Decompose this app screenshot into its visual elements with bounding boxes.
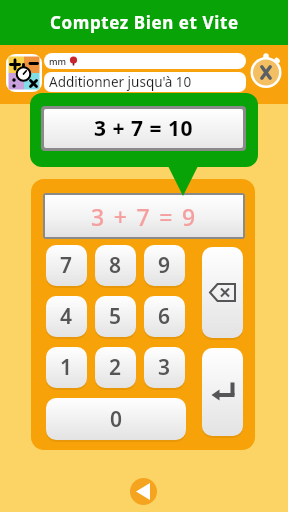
staticText: 3 [158,353,171,382]
button[interactable]: 9 [144,245,185,286]
button[interactable]: Additionner jusqu'à 10 [44,72,246,92]
staticText: 2 [109,353,122,382]
button[interactable]: 5 [95,296,136,337]
button[interactable] [202,348,243,436]
staticText: 3 + 7 = 9 [91,201,197,232]
staticText: 0 [110,405,123,434]
button[interactable]: 7 [46,245,87,286]
button[interactable]: 0 [46,398,186,440]
button[interactable] [6,54,42,92]
button[interactable]: 3 [144,347,185,388]
button[interactable]: 6 [144,296,185,337]
staticText: 1 [60,353,73,382]
staticText: Additionner jusqu'à 10 [49,73,192,91]
staticText: 7 [60,251,73,280]
button[interactable] [202,247,243,338]
staticText: 4 [60,302,73,331]
button[interactable]: 2 [95,347,136,388]
button[interactable]: 8 [95,245,136,286]
button[interactable]: mm [44,53,246,69]
staticText: Comptez Bien et Vite [50,11,239,34]
button[interactable]: 1 [46,347,87,388]
staticText: 5 [109,302,122,331]
staticText: 9 [158,251,171,280]
staticText: 6 [158,302,171,331]
staticText: 8 [109,251,122,280]
button[interactable]: 4 [46,296,87,337]
staticText: mm [49,55,67,67]
staticText: 3 + 7 = 10 [94,114,193,143]
button[interactable] [130,478,157,505]
button[interactable] [248,52,284,92]
